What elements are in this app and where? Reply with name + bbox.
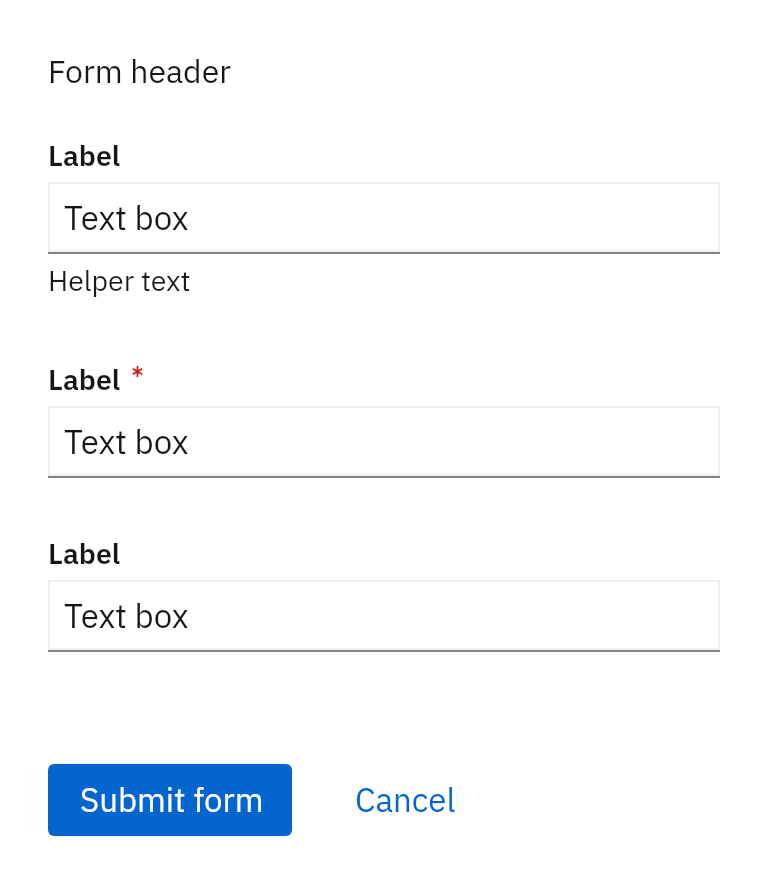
staticText: Label bbox=[48, 137, 121, 174]
staticText: Text box bbox=[64, 196, 189, 239]
button[interactable]: Cancel bbox=[326, 764, 484, 836]
button[interactable]: Label text box bbox=[48, 182, 720, 254]
staticText: Form header bbox=[48, 50, 231, 92]
button[interactable]: Label, required, text box bbox=[48, 406, 720, 478]
staticText: Text box bbox=[64, 420, 189, 463]
staticText: Cancel bbox=[355, 778, 456, 821]
staticText: Text box bbox=[64, 594, 189, 637]
staticText: Submit form bbox=[80, 778, 264, 821]
staticText: Label bbox=[48, 361, 121, 398]
staticText: Label bbox=[48, 535, 121, 572]
button[interactable]: Label text box bbox=[48, 580, 720, 652]
staticText: Helper text bbox=[48, 262, 191, 299]
button[interactable]: Submit form bbox=[48, 764, 292, 836]
